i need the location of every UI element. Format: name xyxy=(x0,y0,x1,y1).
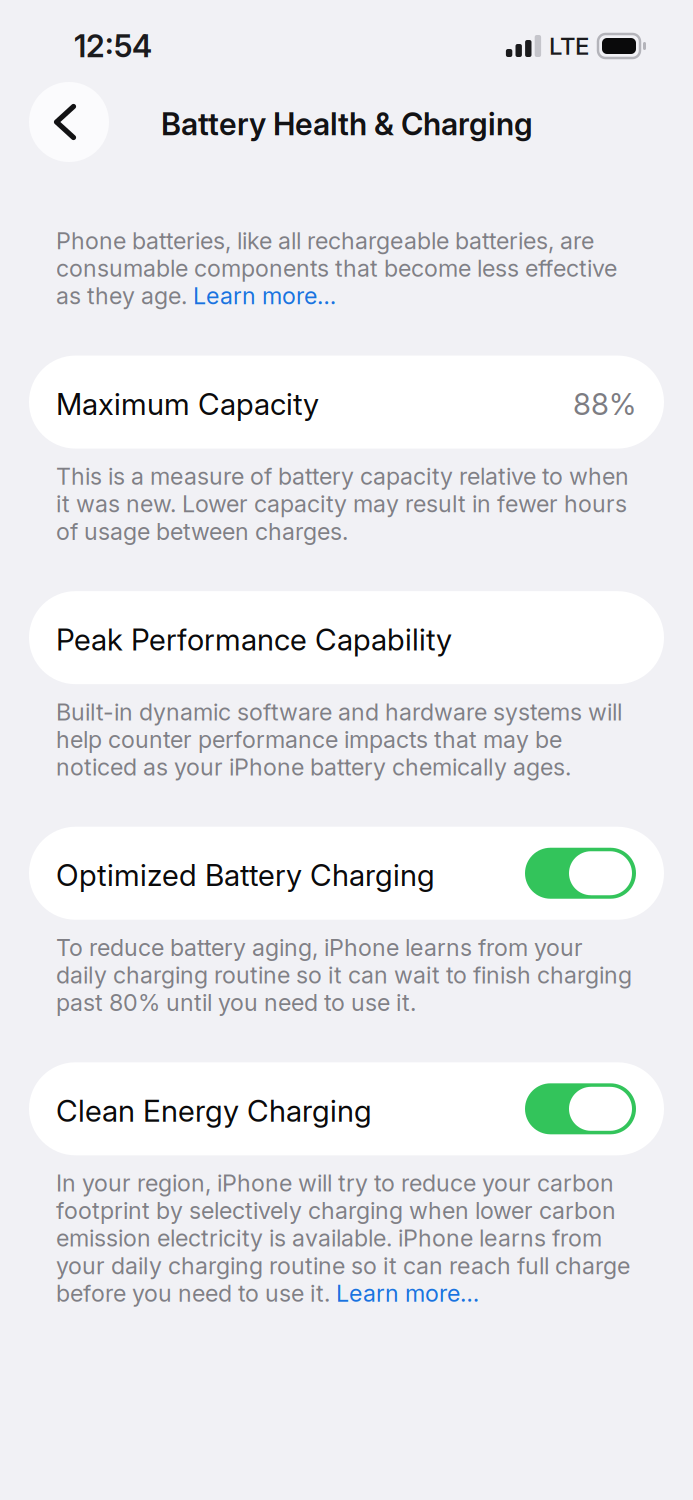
staticText: Battery Health & Charging xyxy=(161,106,533,142)
staticText: Optimized Battery Charging xyxy=(56,858,435,893)
button[interactable]: Back xyxy=(29,82,109,162)
staticText: Maximum Capacity xyxy=(56,386,319,422)
staticText: Peak Performance Capability xyxy=(56,622,452,657)
staticText: LTE xyxy=(549,32,589,60)
staticText: 88% xyxy=(573,386,636,422)
button[interactable]: Peak Performance Capability xyxy=(0,591,693,684)
staticText: Built-in dynamic software and hardware s… xyxy=(56,698,622,781)
staticText: In your region, iPhone will try to reduc… xyxy=(56,1169,630,1307)
button[interactable]: Clean Energy Charging xyxy=(525,1085,636,1136)
staticText: Clean Energy Charging xyxy=(56,1093,372,1128)
staticText: Phone batteries, like all rechargeable b… xyxy=(56,227,617,310)
button[interactable]: Optimized Battery Charging xyxy=(525,850,636,901)
staticText: 12:54 xyxy=(74,28,152,64)
staticText: This is a measure of battery capacity re… xyxy=(56,463,629,545)
staticText: To reduce battery aging, iPhone learns f… xyxy=(56,934,632,1016)
